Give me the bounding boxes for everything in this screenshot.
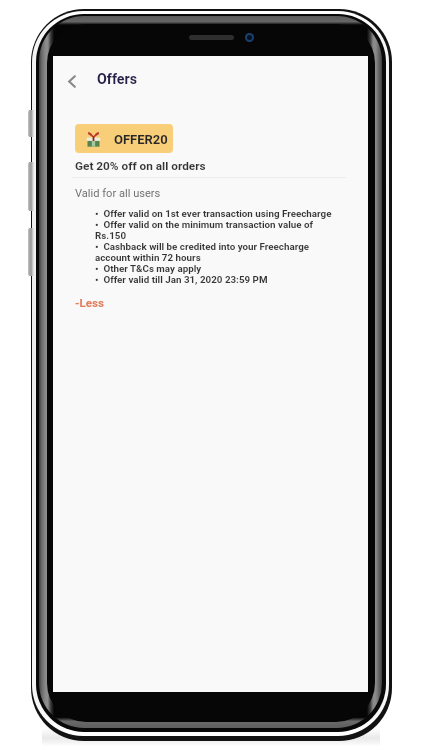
staticText: • Offer valid on 1st ever transaction us… xyxy=(95,208,335,219)
button[interactable]: Back xyxy=(57,66,87,96)
staticText: • Cashback will be credited into your Fr… xyxy=(95,241,335,263)
staticText: • Offer valid till Jan 31, 2020 23:59 PM xyxy=(95,274,335,285)
staticText: Valid for all users xyxy=(75,187,161,200)
staticText: OFFER20 xyxy=(114,132,168,147)
staticText: • Other T&Cs may apply xyxy=(95,263,335,274)
staticText: • Offer valid on the minimum transaction… xyxy=(95,219,335,241)
staticText: Offers xyxy=(97,71,137,88)
button[interactable]: -Less xyxy=(75,296,104,310)
staticText: Get 20% off on all orders xyxy=(75,159,206,173)
button[interactable]: OFFER20 xyxy=(75,124,173,153)
